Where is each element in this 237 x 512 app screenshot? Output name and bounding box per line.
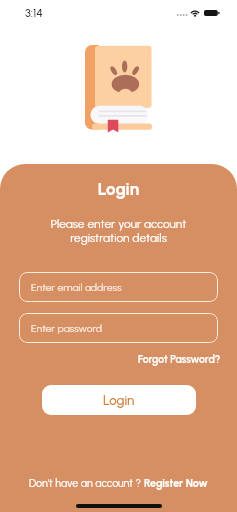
staticText: Register Now [144, 477, 208, 490]
staticText: Forgot Password? [138, 353, 221, 366]
button[interactable]: Forgot Password? [138, 353, 221, 366]
staticText: Enter password [31, 322, 103, 334]
staticText: Login [0, 179, 237, 199]
staticText: 3:14 [25, 6, 43, 20]
button[interactable]: Enter password [19, 313, 218, 343]
staticText: Please enter your account registration d… [0, 217, 237, 245]
staticText: Don't have an account ? [29, 477, 144, 490]
button[interactable]: Register Now [144, 477, 208, 490]
button[interactable]: Login [42, 385, 196, 415]
staticText: Enter email address [31, 281, 122, 293]
staticText: Login [103, 392, 135, 408]
button[interactable]: Enter email address [19, 272, 218, 302]
